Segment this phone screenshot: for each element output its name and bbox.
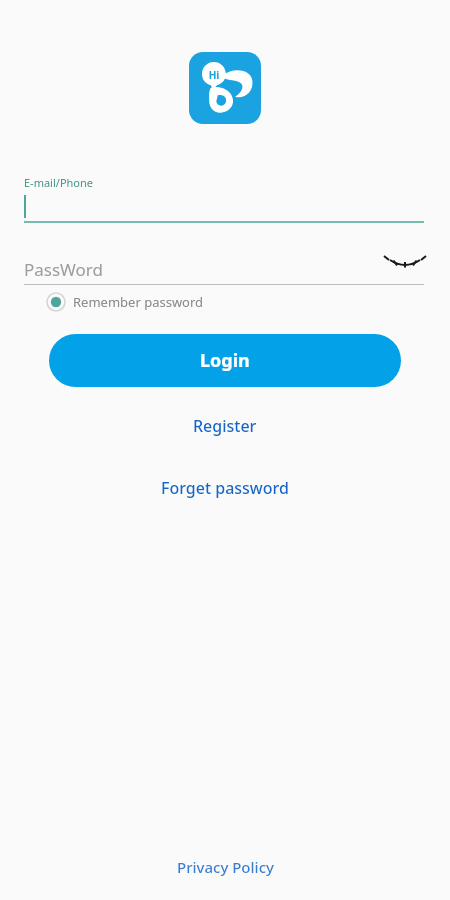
button[interactable] — [24, 192, 424, 223]
staticText: Login — [200, 348, 250, 373]
button[interactable]: PassWord — [24, 254, 424, 285]
staticText: PassWord — [24, 258, 103, 281]
staticText: Privacy Policy — [177, 857, 274, 877]
button[interactable]: Register — [155, 410, 295, 442]
button[interactable]: Remember password — [46, 290, 204, 314]
staticText: Hi — [206, 68, 222, 82]
staticText: Register — [193, 415, 257, 437]
button[interactable]: Show password — [386, 244, 424, 282]
button[interactable]: Forget password — [140, 472, 310, 504]
staticText: Remember password — [73, 293, 204, 311]
button[interactable]: Login — [49, 334, 401, 387]
staticText: Forget password — [161, 477, 289, 499]
button[interactable]: Privacy Policy — [150, 851, 300, 883]
staticText: E-mail/Phone — [24, 175, 93, 190]
